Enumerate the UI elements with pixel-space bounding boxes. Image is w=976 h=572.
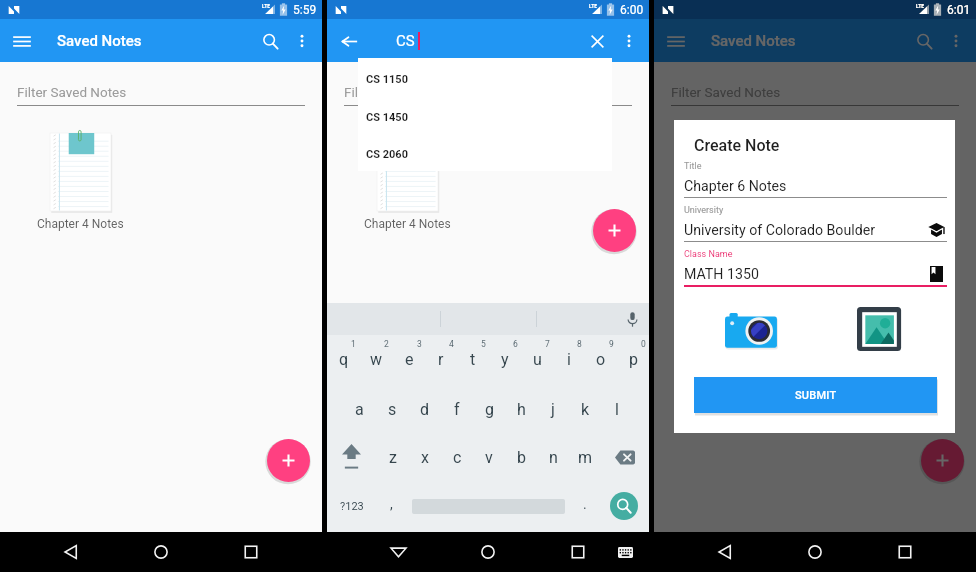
- staticText: Chapter 4 Notes: [37, 217, 124, 231]
- button[interactable]: s: [376, 389, 409, 429]
- staticText: CS 2060: [366, 148, 408, 161]
- staticText: 2: [384, 339, 389, 349]
- staticText: Create Note: [694, 136, 780, 155]
- button[interactable]: Create note: [267, 439, 310, 482]
- staticText: ,: [390, 496, 393, 512]
- button[interactable]: z: [376, 437, 409, 477]
- button[interactable]: Recents: [887, 534, 923, 570]
- staticText: 9: [609, 339, 614, 349]
- button[interactable]: Search: [907, 24, 941, 58]
- button[interactable]: k: [569, 389, 601, 429]
- button[interactable]: ,: [377, 485, 406, 527]
- button[interactable]: Search: [598, 485, 649, 527]
- button[interactable]: m: [569, 437, 601, 477]
- button[interactable]: h: [505, 389, 537, 429]
- staticText: l: [615, 400, 619, 419]
- staticText: CS: [396, 32, 415, 50]
- button[interactable]: Open navigation menu: [6, 25, 38, 57]
- button[interactable]: .: [571, 485, 598, 527]
- button[interactable]: 5: [457, 339, 489, 383]
- staticText: u: [533, 350, 542, 369]
- staticText: 1: [351, 339, 356, 349]
- button[interactable]: 2: [360, 339, 393, 383]
- button[interactable]: x: [409, 437, 441, 477]
- button[interactable]: Backspace: [601, 437, 649, 477]
- staticText: MATH 1350: [684, 266, 759, 283]
- button[interactable]: SUBMIT: [694, 377, 937, 413]
- button[interactable]: Open navigation menu: [660, 25, 692, 57]
- staticText: k: [581, 400, 590, 419]
- button[interactable]: Choose from gallery: [853, 304, 905, 355]
- staticText: t: [470, 350, 476, 369]
- button[interactable]: c: [441, 437, 473, 477]
- staticText: LTE: [262, 3, 271, 9]
- staticText: f: [454, 400, 460, 419]
- staticText: p: [629, 350, 638, 369]
- button[interactable]: Hide keyboard: [380, 534, 416, 570]
- staticText: University of Colorado Boulder: [684, 222, 876, 239]
- staticText: Chapter 6 Notes: [684, 178, 787, 195]
- button[interactable]: 0: [617, 339, 649, 383]
- button[interactable]: 4: [425, 339, 457, 383]
- button[interactable]: l: [601, 389, 633, 429]
- button[interactable]: Recents: [233, 534, 269, 570]
- button[interactable]: b: [505, 437, 537, 477]
- button[interactable]: 9: [585, 339, 617, 383]
- button[interactable]: Create note: [921, 439, 964, 482]
- staticText: Saved Notes: [711, 32, 796, 50]
- button[interactable]: f: [441, 389, 473, 429]
- staticText: i: [567, 350, 571, 369]
- staticText: 7: [545, 339, 550, 349]
- button[interactable]: Home: [470, 534, 506, 570]
- button[interactable]: j: [537, 389, 569, 429]
- button[interactable]: More options: [614, 26, 644, 56]
- staticText: .: [583, 496, 587, 512]
- button[interactable]: Home: [797, 534, 833, 570]
- button[interactable]: Navigate up: [333, 25, 365, 57]
- staticText: SUBMIT: [795, 389, 837, 402]
- staticText: w: [370, 350, 383, 369]
- button[interactable]: Switch keyboard: [609, 536, 641, 568]
- button[interactable]: 8: [553, 339, 585, 383]
- button[interactable]: Take a photo: [719, 306, 783, 355]
- button[interactable]: Clear search: [580, 24, 614, 58]
- button[interactable]: d: [409, 389, 441, 429]
- staticText: 0: [641, 339, 646, 349]
- button[interactable]: Recents: [560, 534, 596, 570]
- button[interactable]: ?123: [327, 485, 377, 527]
- staticText: Class Name: [684, 249, 733, 260]
- button[interactable]: Create note: [593, 209, 636, 252]
- button[interactable]: 3: [393, 339, 425, 383]
- staticText: 4: [449, 339, 454, 349]
- button[interactable]: Space: [406, 485, 571, 527]
- button[interactable]: a: [343, 389, 376, 429]
- button[interactable]: CS 2060: [358, 140, 612, 168]
- button[interactable]: Shift: [327, 437, 376, 477]
- button[interactable]: Search: [253, 24, 287, 58]
- button[interactable]: Back: [707, 534, 743, 570]
- button[interactable]: n: [537, 437, 569, 477]
- button[interactable]: More options: [287, 26, 317, 56]
- button[interactable]: CS 1150: [358, 65, 612, 93]
- button[interactable]: 1: [327, 339, 360, 383]
- staticText: Filter Saved Notes: [671, 84, 781, 100]
- staticText: 5:59: [293, 3, 317, 17]
- staticText: Filter Saved Notes: [17, 84, 127, 100]
- button[interactable]: More options: [941, 26, 971, 56]
- staticText: b: [517, 448, 526, 467]
- staticText: CS 1450: [366, 111, 408, 124]
- staticText: n: [549, 448, 558, 467]
- button[interactable]: v: [473, 437, 505, 477]
- staticText: Chapter 4 Notes: [691, 217, 778, 231]
- button[interactable]: Voice input: [620, 307, 644, 331]
- button[interactable]: g: [473, 389, 505, 429]
- staticText: ?123: [340, 500, 364, 513]
- button[interactable]: CS 1450: [358, 103, 612, 131]
- button[interactable]: Back: [53, 534, 89, 570]
- button[interactable]: 6: [489, 339, 521, 383]
- button[interactable]: Home: [143, 534, 179, 570]
- staticText: University: [684, 205, 724, 216]
- button[interactable]: 7: [521, 339, 553, 383]
- staticText: x: [421, 448, 429, 467]
- staticText: CS 1150: [366, 73, 408, 86]
